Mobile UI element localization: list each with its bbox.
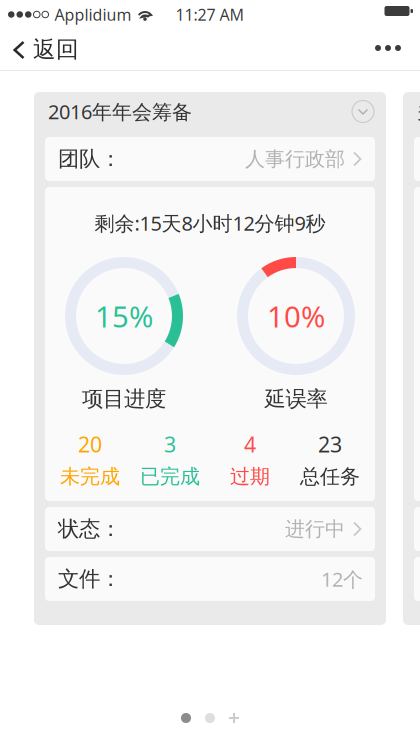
button[interactable]: 状态： [45, 507, 375, 551]
staticText: 过期 [230, 464, 270, 489]
staticText: 已完成 [140, 464, 200, 489]
staticText: 团队： [58, 146, 121, 172]
button[interactable]: 团队： [45, 137, 375, 181]
button[interactable]: 返回 [0, 29, 89, 71]
button[interactable]: Collapse card [349, 97, 377, 125]
staticText: 返回 [33, 36, 79, 63]
staticText: 人事行政部 [245, 147, 345, 171]
button[interactable]: Add board [222, 706, 246, 730]
staticText: 4 [244, 430, 256, 458]
staticText: 延误率 [264, 386, 327, 412]
staticText: 3 [164, 430, 176, 458]
staticText: 23 [318, 430, 342, 458]
button[interactable]: Page 2 [198, 706, 222, 730]
staticText: 状态： [58, 516, 121, 542]
staticText: 总任务 [300, 464, 360, 489]
staticText: 15% [95, 296, 153, 335]
staticText: 剩余:15天8小时12分钟9秒 [94, 210, 325, 236]
staticText: 项目进度 [82, 386, 166, 412]
staticText: 关键项目跟进 [417, 99, 420, 124]
staticText: 20 [78, 430, 102, 458]
button[interactable]: Page 1 [174, 706, 198, 730]
staticText: 11:27 AM [175, 4, 244, 25]
button[interactable]: More options [357, 29, 420, 71]
staticText: 文件： [58, 566, 121, 592]
staticText: 10% [267, 296, 325, 335]
button[interactable]: 文件： [45, 557, 375, 601]
staticText: Applidium [54, 4, 131, 25]
staticText: 12个 [321, 566, 363, 592]
staticText: 进行中 [285, 517, 345, 541]
staticText: 2016年年会筹备 [48, 98, 192, 125]
staticText: 未完成 [60, 464, 120, 489]
